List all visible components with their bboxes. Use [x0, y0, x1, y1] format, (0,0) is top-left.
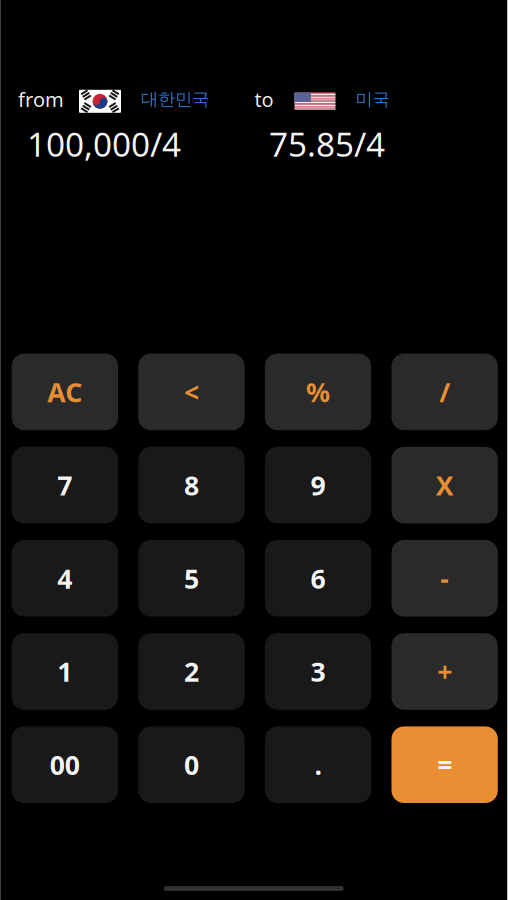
staticText: X [436, 467, 454, 503]
button[interactable]: 5 [138, 540, 245, 617]
staticText: to [254, 86, 273, 113]
staticText: 4 [57, 561, 72, 596]
button[interactable]: 7 [12, 447, 118, 523]
button[interactable]: AC [12, 354, 118, 430]
staticText: 2 [184, 654, 199, 689]
staticText: 8 [184, 467, 199, 503]
staticText: AC [47, 374, 82, 410]
button[interactable]: 6 [265, 540, 371, 617]
button[interactable]: 2 [138, 633, 245, 710]
button[interactable]: 3 [265, 633, 371, 710]
button[interactable]: / [391, 354, 498, 430]
button[interactable]: X [391, 447, 498, 523]
staticText: = [437, 747, 452, 782]
staticText: + [437, 654, 452, 689]
button[interactable]: . [265, 726, 371, 803]
staticText: 대한민국 [141, 89, 209, 110]
staticText: 5 [184, 561, 199, 596]
button[interactable]: < [138, 354, 245, 430]
staticText: 100,000/4 [27, 122, 181, 166]
button[interactable]: Target currency: 미국 [254, 86, 389, 113]
staticText: . [314, 747, 321, 782]
button[interactable]: 8 [138, 447, 245, 523]
button[interactable]: Source currency: 대한민국 [18, 86, 209, 113]
staticText: from [18, 86, 64, 113]
button[interactable]: = [391, 726, 498, 803]
button[interactable]: + [391, 633, 498, 710]
button[interactable]: 0 [138, 726, 245, 803]
button[interactable]: - [391, 540, 498, 617]
button[interactable]: 1 [12, 633, 118, 710]
button[interactable]: 9 [265, 447, 371, 523]
staticText: 75.85/4 [269, 122, 385, 166]
staticText: 6 [310, 561, 325, 596]
staticText: % [306, 374, 330, 410]
staticText: 1 [57, 654, 72, 689]
staticText: 00 [50, 747, 80, 782]
button[interactable]: 4 [12, 540, 118, 617]
staticText: - [440, 561, 449, 596]
button[interactable]: % [265, 354, 371, 430]
staticText: 0 [184, 747, 199, 782]
staticText: 미국 [355, 89, 389, 110]
button[interactable]: 00 [12, 726, 118, 803]
staticText: 7 [57, 467, 72, 503]
staticText: 9 [310, 467, 325, 503]
staticText: < [184, 374, 199, 410]
staticText: / [439, 374, 450, 410]
staticText: 3 [310, 654, 325, 689]
